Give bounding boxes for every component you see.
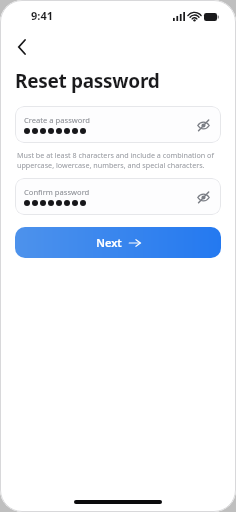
button[interactable]: Back [7, 32, 37, 62]
staticText: 9:41 [31, 8, 53, 23]
button[interactable]: Next [15, 227, 221, 258]
staticText: Next [96, 235, 122, 250]
button[interactable]: Show password [192, 186, 214, 208]
staticText: Confirm password [24, 187, 90, 197]
staticText: Reset password [15, 68, 160, 94]
staticText: Must be at least 8 characters and includ… [17, 150, 218, 170]
button[interactable]: Confirm password [15, 178, 221, 215]
button[interactable]: Show password [192, 114, 214, 136]
button[interactable]: Create a password [15, 106, 221, 143]
staticText: Create a password [24, 115, 90, 125]
